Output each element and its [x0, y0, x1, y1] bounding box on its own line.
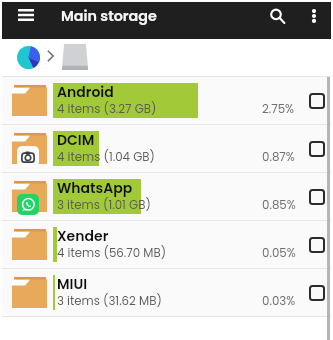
button[interactable]: Android	[2, 77, 331, 124]
button[interactable]: Main storage	[61, 44, 89, 70]
staticText: 0.03%	[262, 293, 296, 310]
staticText: WhatsApp	[57, 178, 133, 198]
button[interactable]: More options	[298, 0, 329, 31]
button[interactable]: Search	[261, 0, 294, 32]
staticText: 0.85%	[262, 197, 296, 214]
button[interactable]: WhatsApp	[2, 173, 331, 220]
staticText: 4 items (56.70 MB)	[57, 245, 167, 262]
staticText: 2.75%	[262, 101, 295, 118]
staticText: 3 items (31.62 MB)	[57, 293, 162, 310]
button[interactable]: DCIM	[2, 125, 331, 172]
button[interactable]: Select MIUI	[302, 278, 331, 307]
staticText: 0.05%	[262, 245, 296, 262]
staticText: 0.87%	[262, 149, 295, 166]
button[interactable]: Select WhatsApp	[302, 182, 331, 211]
button[interactable]: Navigate deeper	[44, 47, 57, 65]
button[interactable]: Select DCIM	[302, 134, 331, 163]
staticText: 4 items (1.04 GB)	[57, 149, 155, 166]
staticText: 3 items (1.01 GB)	[57, 197, 151, 214]
button[interactable]: MIUI	[2, 269, 331, 316]
staticText: DCIM	[57, 130, 95, 150]
button[interactable]: Open navigation drawer	[6, 0, 46, 31]
button[interactable]: Select Android	[302, 86, 331, 115]
button[interactable]: Select Xender	[302, 230, 331, 259]
button[interactable]: Storage analysis	[13, 42, 44, 73]
staticText: 4 items (3.27 GB)	[57, 101, 157, 118]
staticText: Xender	[57, 226, 109, 246]
button[interactable]: Xender	[2, 221, 331, 268]
staticText: MIUI	[57, 274, 88, 294]
staticText: Main storage	[61, 6, 157, 26]
staticText: Android	[57, 82, 114, 102]
